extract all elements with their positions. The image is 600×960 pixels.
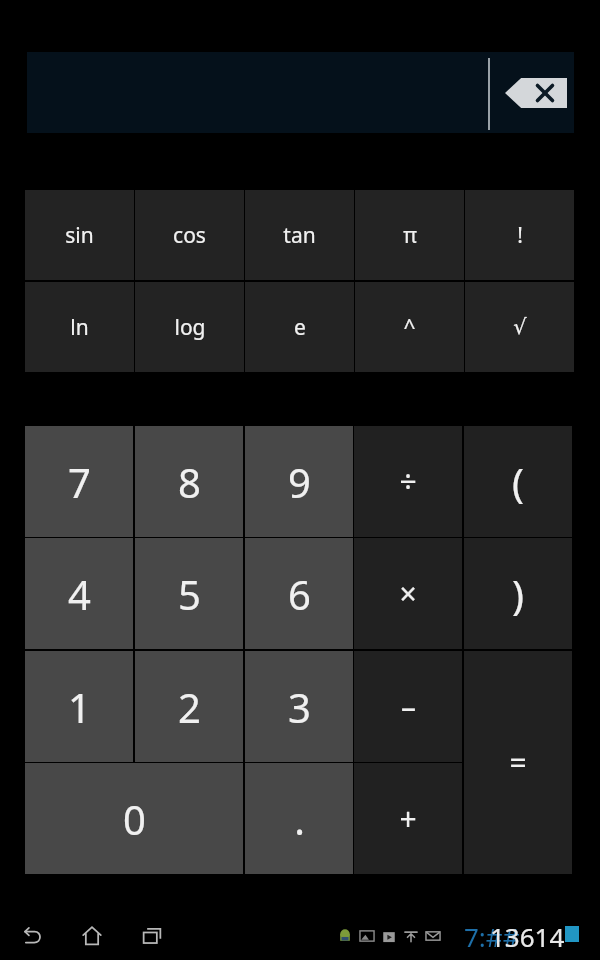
button[interactable]: ÷ — [354, 426, 462, 537]
button[interactable]: 3 — [245, 651, 353, 762]
button[interactable]: × — [354, 538, 462, 649]
button[interactable]: . — [245, 763, 353, 874]
button[interactable]: 4 — [25, 538, 133, 649]
staticText: = — [509, 742, 527, 783]
button[interactable]: 2 — [135, 651, 243, 762]
button[interactable]: ^ — [355, 282, 464, 372]
button[interactable]: 1 — [25, 651, 133, 762]
staticText: cos — [173, 221, 206, 250]
staticText: 7:## — [464, 919, 520, 954]
staticText: × — [399, 573, 417, 614]
staticText: + — [399, 798, 417, 839]
staticText: tan — [283, 221, 316, 250]
staticText: 9 — [288, 455, 311, 509]
button[interactable]: ) — [464, 538, 572, 649]
button[interactable]: Home — [68, 912, 116, 960]
staticText: 1 — [68, 680, 91, 734]
button[interactable]: √ — [465, 282, 574, 372]
staticText: 5 — [178, 567, 201, 621]
staticText: . — [294, 792, 305, 846]
button[interactable]: tan — [245, 190, 354, 280]
staticText: ! — [517, 221, 523, 250]
button[interactable]: 7 — [25, 426, 133, 537]
staticText: e — [294, 313, 306, 342]
button[interactable]: log — [135, 282, 244, 372]
staticText: ^ — [403, 313, 416, 342]
staticText: 6 — [288, 567, 311, 621]
staticText: 0 — [123, 792, 146, 846]
button[interactable]: 0 — [25, 763, 243, 874]
button[interactable]: 6 — [245, 538, 353, 649]
staticText: 3 — [288, 680, 311, 734]
staticText: √ — [513, 315, 527, 339]
staticText: 8 — [178, 455, 201, 509]
button[interactable]: Back — [8, 912, 56, 960]
staticText: 2 — [178, 680, 201, 734]
staticText: 13614 — [490, 919, 565, 954]
staticText: sin — [65, 221, 94, 250]
button[interactable]: ( — [464, 426, 572, 537]
button[interactable]: ln — [25, 282, 134, 372]
button[interactable]: cos — [135, 190, 244, 280]
staticText: π — [403, 221, 417, 250]
button[interactable]: e — [245, 282, 354, 372]
button[interactable]: + — [354, 763, 462, 874]
staticText: 4 — [68, 567, 91, 621]
button[interactable]: – — [354, 651, 462, 762]
staticText: – — [401, 686, 416, 727]
staticText: ( — [512, 455, 524, 509]
button[interactable]: π — [355, 190, 464, 280]
button[interactable]: 8 — [135, 426, 243, 537]
staticText: ÷ — [399, 461, 417, 502]
button[interactable]: ! — [465, 190, 574, 280]
button[interactable]: sin — [25, 190, 134, 280]
button[interactable]: Recent apps — [128, 912, 176, 960]
button[interactable]: 9 — [245, 426, 353, 537]
staticText: ln — [70, 313, 89, 342]
button[interactable]: Backspace — [505, 78, 567, 108]
staticText: ) — [512, 567, 524, 621]
button[interactable]: 5 — [135, 538, 243, 649]
staticText: log — [174, 313, 206, 342]
staticText: 7 — [68, 455, 91, 509]
button[interactable]: = — [464, 651, 572, 874]
